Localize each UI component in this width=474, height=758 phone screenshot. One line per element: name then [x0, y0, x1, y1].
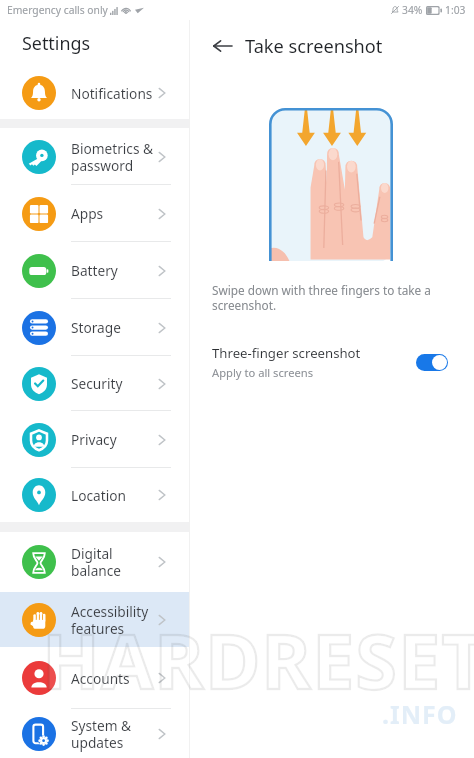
- button[interactable]: Battery: [0, 242, 189, 299]
- button[interactable]: Three-finger screenshot toggle: [416, 354, 448, 371]
- staticText: HARDRESET: [42, 608, 474, 711]
- staticText: Battery: [71, 261, 158, 280]
- staticText: Storage: [71, 318, 158, 337]
- button[interactable]: Accounts: [0, 647, 189, 709]
- staticText: 1:03: [445, 3, 466, 17]
- staticText: Apps: [71, 204, 158, 223]
- staticText: Security: [71, 374, 158, 393]
- button[interactable]: Notifications: [0, 67, 189, 119]
- button[interactable]: System & updates: [0, 709, 189, 758]
- button[interactable]: Back: [209, 33, 235, 59]
- staticText: Apply to all screens: [212, 365, 314, 380]
- staticText: Three-finger screenshot: [212, 344, 361, 362]
- staticText: System & updates: [71, 716, 158, 752]
- staticText: Biometrics & password: [71, 139, 158, 175]
- staticText: Accounts: [71, 669, 158, 688]
- button[interactable]: Location: [0, 468, 189, 522]
- staticText: HARDRESET: [42, 608, 474, 711]
- staticText: Digital balance: [71, 544, 158, 580]
- staticText: Notifications: [71, 84, 158, 103]
- button[interactable]: Accessibility features: [0, 592, 189, 647]
- button[interactable]: Three-finger screenshot: [190, 339, 474, 385]
- staticText: Swipe down with three fingers to take a …: [212, 282, 431, 314]
- staticText: 34%: [402, 3, 423, 17]
- staticText: Privacy: [71, 430, 158, 449]
- staticText: Settings: [22, 31, 91, 55]
- staticText: Take screenshot: [245, 34, 383, 59]
- staticText: Accessibility features: [71, 602, 158, 638]
- staticText: .INFO: [382, 697, 458, 731]
- staticText: Emergency calls only: [7, 3, 108, 17]
- button[interactable]: Storage: [0, 299, 189, 356]
- button[interactable]: Privacy: [0, 411, 189, 468]
- button[interactable]: Biometrics & password: [0, 128, 189, 185]
- button[interactable]: Apps: [0, 185, 189, 242]
- button[interactable]: Security: [0, 356, 189, 411]
- staticText: Location: [71, 486, 158, 505]
- button[interactable]: Digital balance: [0, 532, 189, 592]
